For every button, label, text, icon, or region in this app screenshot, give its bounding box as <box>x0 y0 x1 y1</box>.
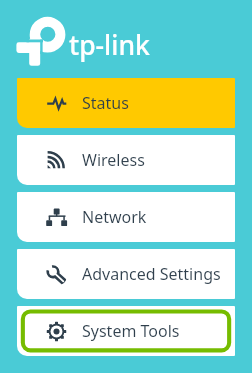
staticText: System Tools <box>82 320 180 342</box>
button[interactable]: Status <box>17 78 235 128</box>
staticText: Advanced Settings <box>82 263 221 285</box>
button[interactable]: System Tools <box>17 306 235 356</box>
staticText: Status <box>82 92 129 114</box>
staticText: tp-link <box>69 27 150 63</box>
staticText: Network <box>82 206 147 228</box>
staticText: Wireless <box>82 149 145 171</box>
button[interactable]: Wireless <box>17 135 235 185</box>
button[interactable]: Advanced Settings <box>17 249 235 299</box>
button[interactable]: Network <box>17 192 235 242</box>
